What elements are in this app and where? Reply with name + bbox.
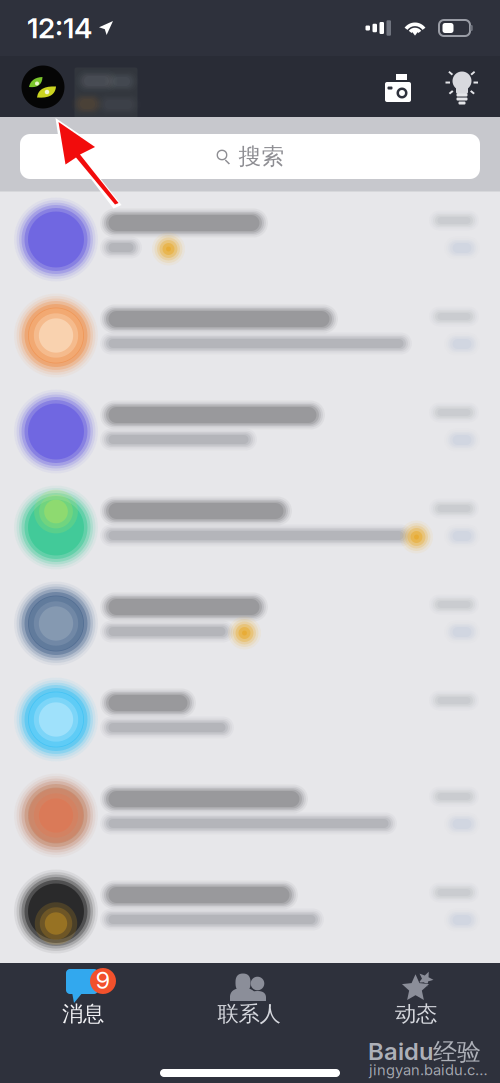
staticText: 12:14 (27, 11, 92, 45)
button[interactable]: 搜索 (0, 117, 500, 196)
staticText: jingyan.baidu.com (369, 1061, 495, 1079)
button[interactable]: Camera (376, 65, 420, 109)
staticText: 动态 (395, 1001, 437, 1027)
button[interactable] (0, 671, 500, 767)
button[interactable] (0, 767, 500, 863)
button[interactable] (0, 287, 500, 383)
button[interactable]: Ideas (440, 62, 484, 106)
button[interactable] (0, 383, 500, 479)
button[interactable]: 9 (0, 963, 166, 1035)
button[interactable] (0, 575, 500, 671)
staticText: 联系人 (217, 1001, 280, 1027)
button[interactable] (0, 863, 500, 959)
button[interactable] (0, 191, 500, 287)
staticText: 9 (95, 965, 110, 994)
staticText: Baidu经验 (368, 1037, 481, 1067)
button[interactable]: 联系人 (166, 963, 332, 1035)
staticText: 搜索 (238, 142, 284, 171)
button[interactable]: 动态 (332, 963, 500, 1035)
button[interactable]: Profile (21, 65, 65, 109)
button[interactable] (0, 479, 500, 575)
staticText: 消息 (62, 1001, 104, 1027)
